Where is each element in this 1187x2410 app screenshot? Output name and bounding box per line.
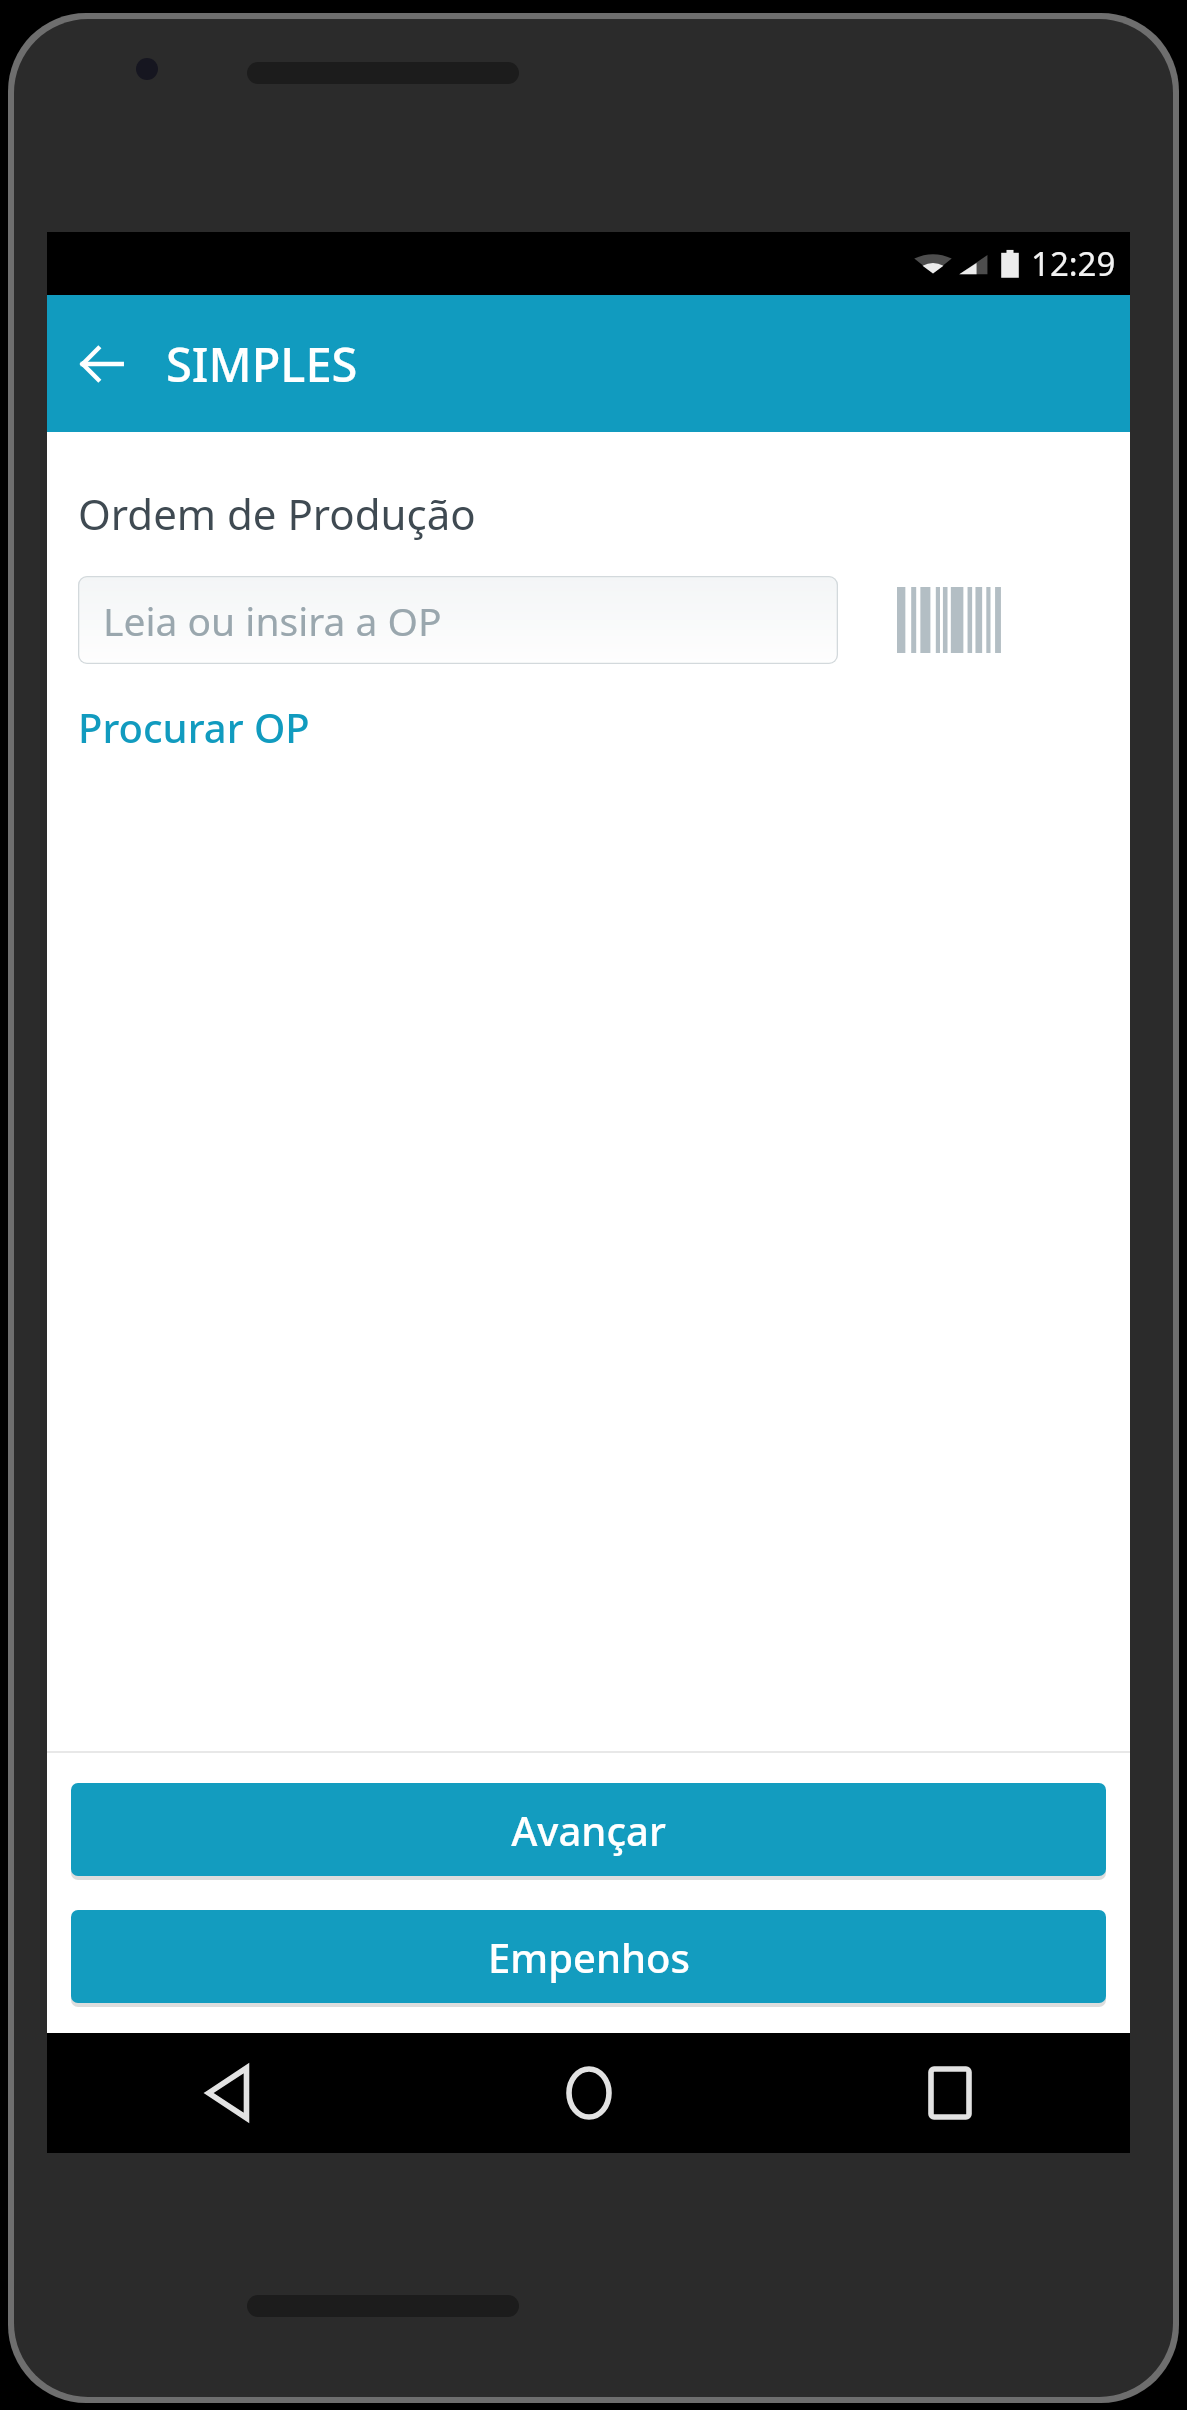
button[interactable]: Avançar (71, 1783, 1106, 1876)
staticText: Leia ou insira a OP (103, 594, 442, 647)
staticText: Empenhos (488, 1930, 690, 1984)
staticText: Avançar (511, 1803, 666, 1857)
button[interactable]: Procurar OP (71, 694, 317, 760)
button[interactable]: Back (54, 316, 150, 412)
button[interactable]: Recent apps (769, 2033, 1130, 2153)
button[interactable]: Back (47, 2033, 408, 2153)
staticText: 12:29 (1031, 241, 1116, 286)
staticText: Ordem de Produção (78, 485, 476, 542)
staticText: SIMPLES (166, 332, 358, 396)
button[interactable]: Empenhos (71, 1910, 1106, 2003)
button[interactable]: Home (408, 2033, 769, 2153)
button[interactable]: Scan barcode (880, 570, 1010, 670)
staticText: Procurar OP (78, 700, 310, 754)
button[interactable]: Leia ou insira a OP (78, 576, 838, 664)
